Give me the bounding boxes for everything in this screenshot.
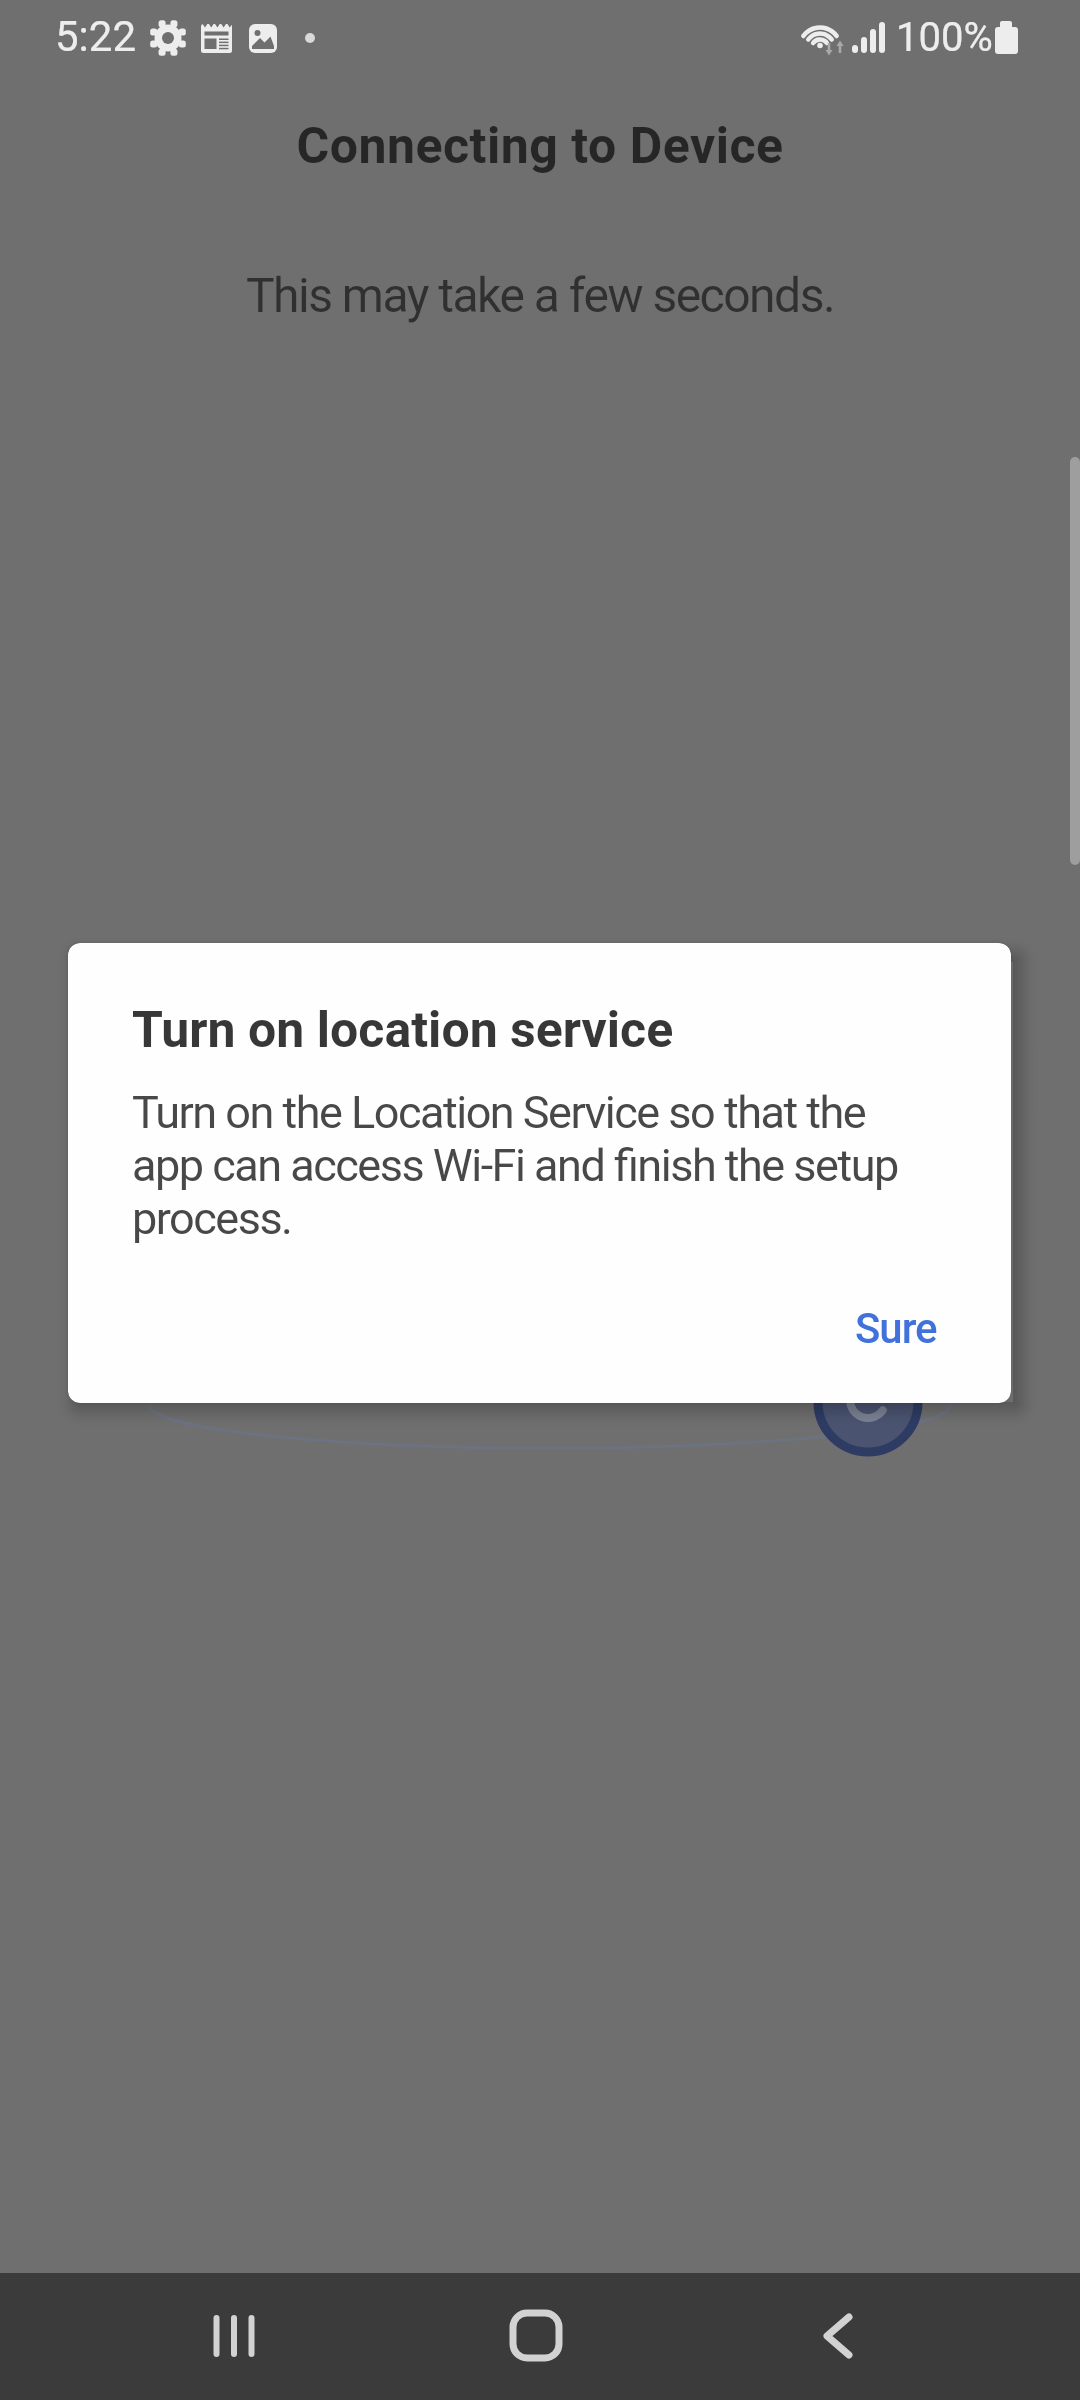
staticText: 100%: [896, 14, 993, 61]
staticText: Sure: [855, 1304, 937, 1353]
button[interactable]: [486, 2286, 586, 2386]
staticText: This may take a few seconds.: [0, 267, 1080, 323]
button[interactable]: Sure: [835, 1290, 957, 1367]
staticText: 5:22: [55, 12, 136, 61]
staticText: Turn on the Location Service so that the…: [132, 1086, 898, 1245]
staticText: Connecting to Device: [0, 117, 1080, 176]
button[interactable]: [788, 2286, 888, 2386]
staticText: Turn on location service: [132, 1001, 674, 1060]
button[interactable]: [166, 2286, 266, 2386]
